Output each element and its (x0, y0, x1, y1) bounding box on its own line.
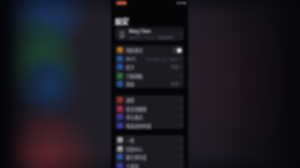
staticText: 開啟 (171, 64, 179, 70)
staticText: Wi-Fi (126, 56, 136, 62)
staticText: 關閉 (171, 81, 179, 87)
button[interactable]: 藍牙 (115, 62, 184, 71)
button[interactable]: 飛航模式 (115, 45, 184, 54)
staticText: 熱點 (126, 81, 135, 87)
staticText: 行動網路 (126, 73, 143, 79)
staticText: 控制中心 (126, 146, 143, 152)
button[interactable]: Wi-Fi (115, 54, 184, 63)
staticText: Apple ID、iCloud、媒體與購買 (129, 35, 174, 40)
staticText: 顯示與亮度 (126, 154, 147, 160)
button[interactable]: 熱點 (115, 79, 184, 88)
button[interactable]: Mary Chen (115, 27, 184, 41)
staticText: 聲音與觸覺 (126, 106, 147, 112)
staticText: 螢幕使用時間 (126, 123, 152, 129)
button[interactable]: 螢幕使用時間 (115, 121, 184, 129)
button[interactable]: 控制中心 (115, 144, 184, 153)
staticText: 專注模式 (126, 114, 143, 120)
button[interactable]: 一般 (115, 135, 184, 144)
button[interactable]: 顯示與亮度 (115, 152, 184, 161)
staticText: 通知 (126, 97, 135, 103)
staticText: 主畫面 (126, 163, 139, 168)
button[interactable]: 通知 (115, 95, 184, 104)
staticText: 一般 (126, 137, 135, 143)
button[interactable]: 主畫面 (115, 161, 184, 168)
button[interactable]: 行動網路 (115, 71, 184, 80)
staticText: 飛航模式 (126, 47, 143, 53)
staticText: 設定 (115, 16, 129, 26)
staticText: TP-LINK_5G_A82C (145, 56, 179, 62)
staticText: 藍牙 (126, 64, 135, 70)
staticText: Mary Chen (129, 28, 151, 34)
button[interactable]: 專注模式 (115, 112, 184, 121)
button[interactable]: 聲音與觸覺 (115, 104, 184, 113)
